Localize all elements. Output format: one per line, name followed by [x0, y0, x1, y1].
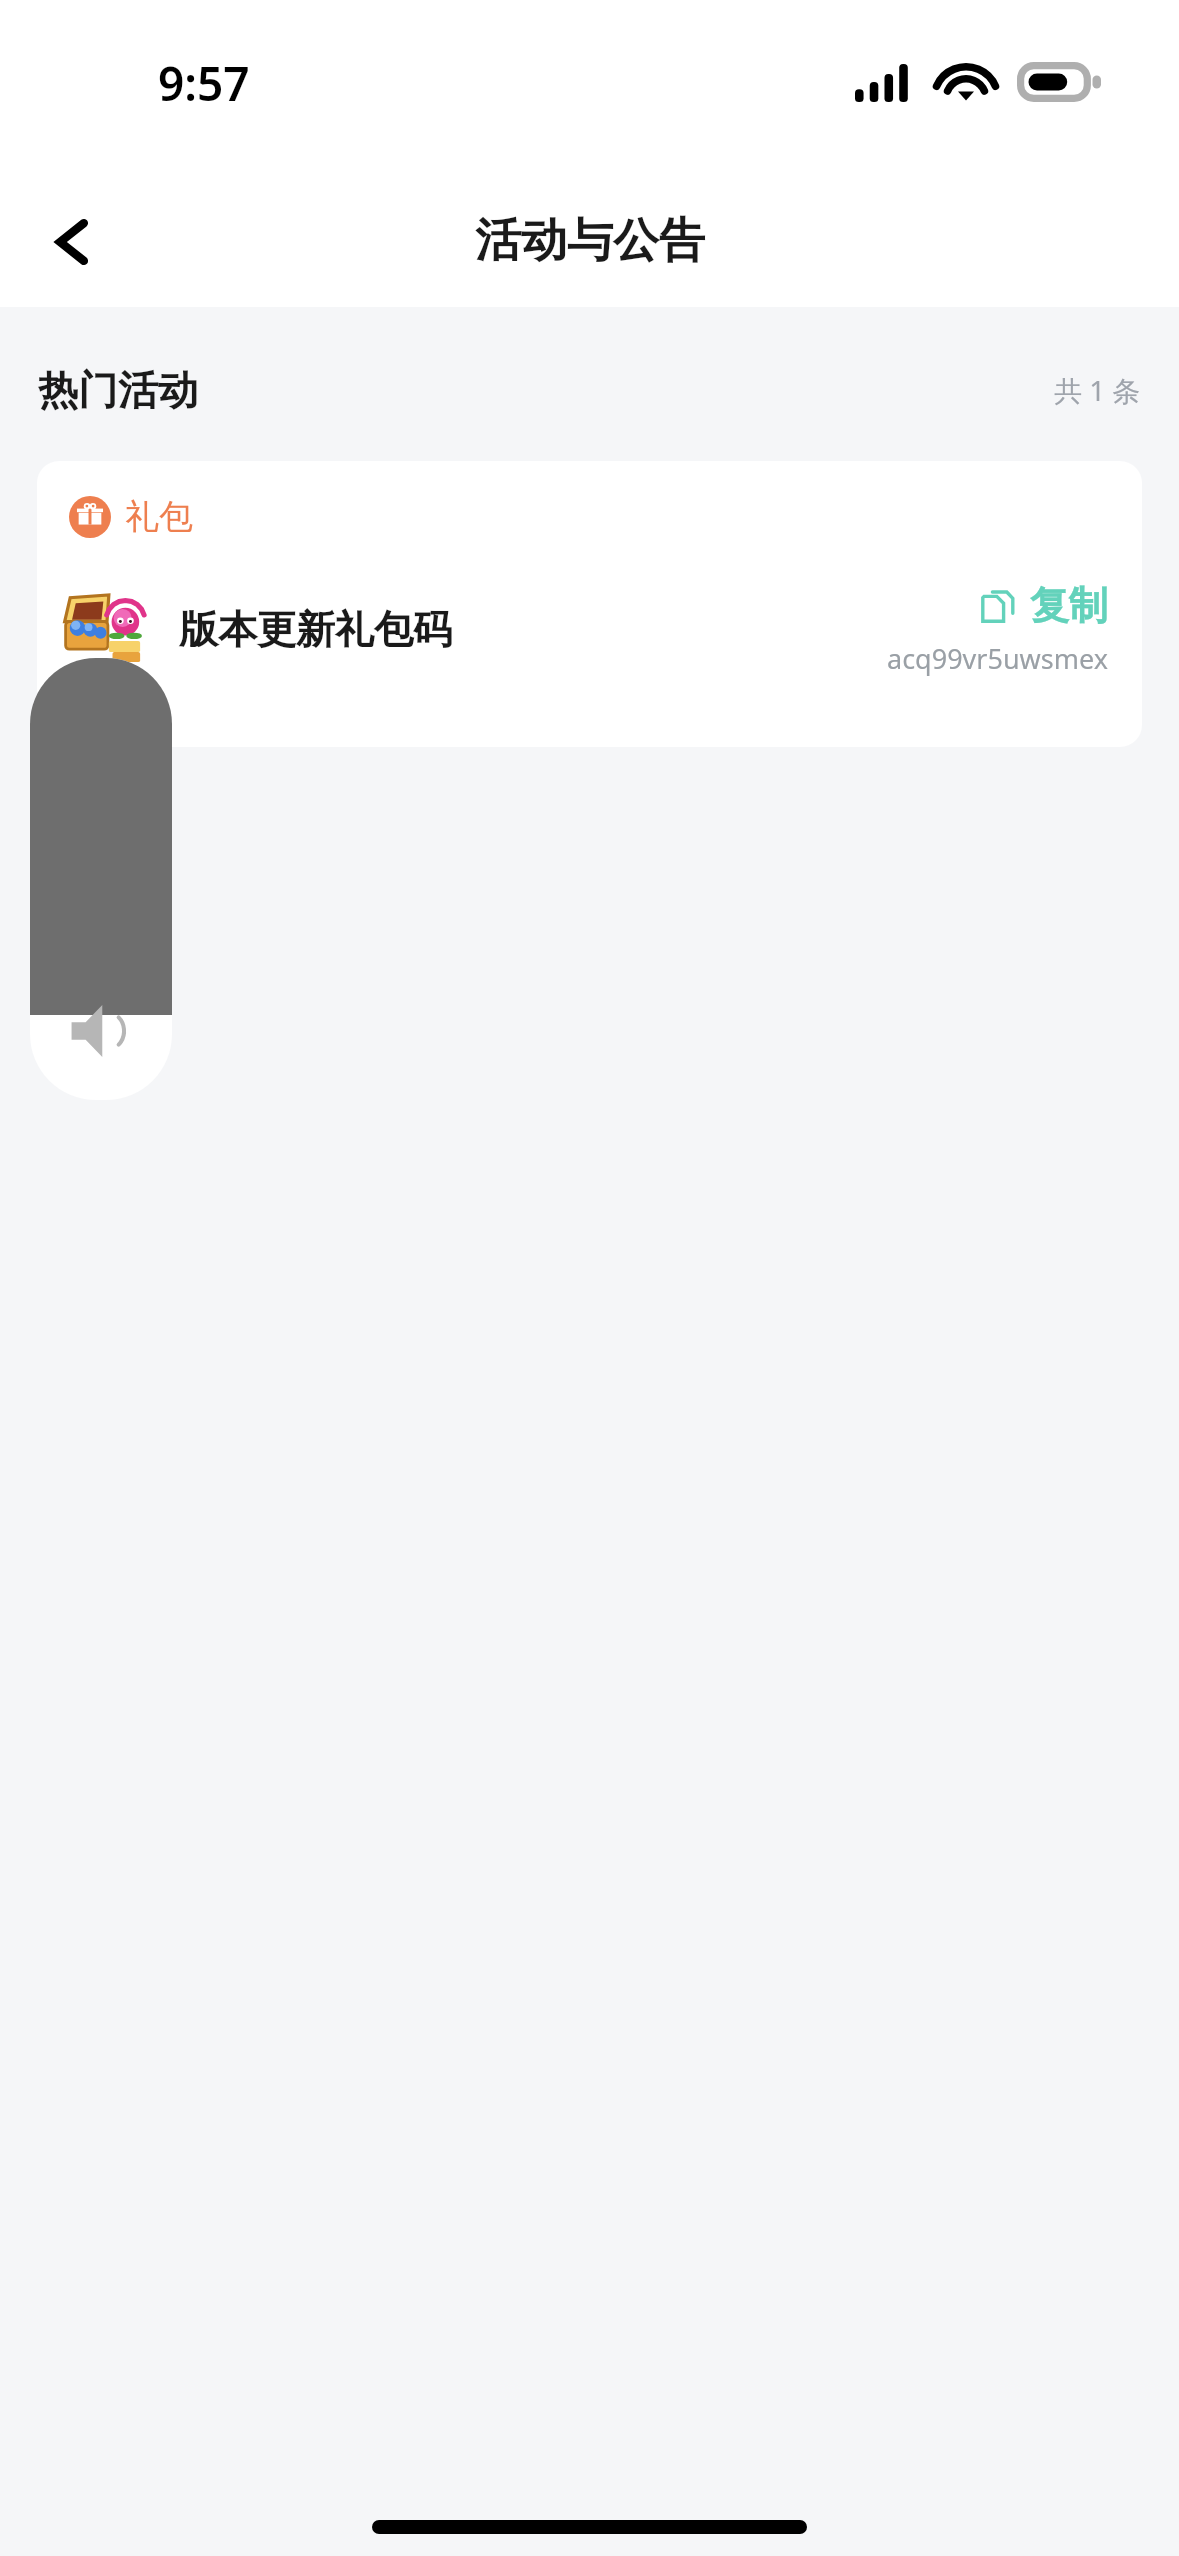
staticText: 热门活动: [38, 365, 198, 415]
button[interactable]: 礼包: [37, 461, 1142, 747]
button[interactable]: 返回: [20, 190, 124, 294]
staticText: acq99vr5uwsmex: [887, 640, 1108, 677]
staticText: 礼包: [125, 495, 193, 538]
staticText: 版本更新礼包码: [179, 605, 452, 654]
staticText: 9:57: [158, 52, 250, 115]
staticText: 共 1 条: [1054, 371, 1141, 409]
staticText: 复制: [1030, 581, 1108, 630]
button[interactable]: 复制: [883, 579, 1112, 679]
staticText: 活动与公告: [475, 212, 705, 270]
